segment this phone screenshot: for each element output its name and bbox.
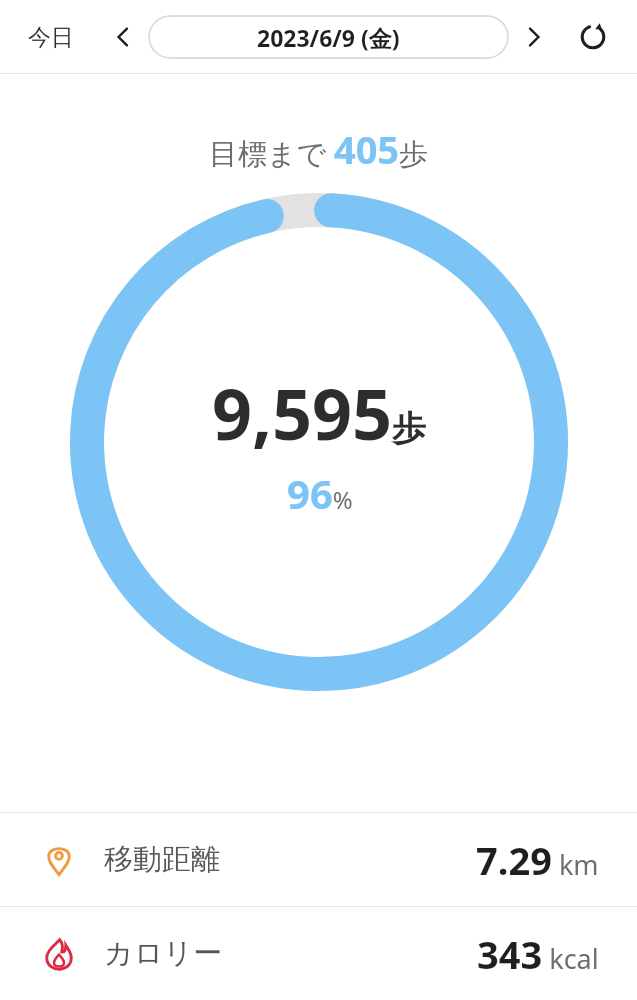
- other: 移動距離: [40, 841, 78, 879]
- staticText: 7.29 km: [476, 834, 599, 886]
- button[interactable]: 次の日: [515, 18, 553, 56]
- staticText: 96%: [287, 466, 353, 520]
- staticText: 移動距離: [104, 841, 220, 878]
- button[interactable]: 更新: [571, 15, 615, 59]
- other: カロリー: [40, 935, 78, 973]
- staticText: 今日: [28, 23, 74, 52]
- staticText: カロリー: [104, 935, 223, 972]
- staticText: 9,595歩: [212, 365, 427, 460]
- button[interactable]: 2023/6/9 (金): [148, 15, 509, 59]
- staticText: 2023/6/9 (金): [257, 22, 400, 53]
- staticText: 目標まで 405歩: [209, 123, 429, 175]
- staticText: 343 kcal: [477, 928, 599, 980]
- button[interactable]: 前の日: [104, 18, 142, 56]
- button[interactable]: 今日: [22, 17, 80, 58]
- button[interactable]: カロリー: [0, 907, 637, 1000]
- button[interactable]: 移動距離: [0, 813, 637, 906]
